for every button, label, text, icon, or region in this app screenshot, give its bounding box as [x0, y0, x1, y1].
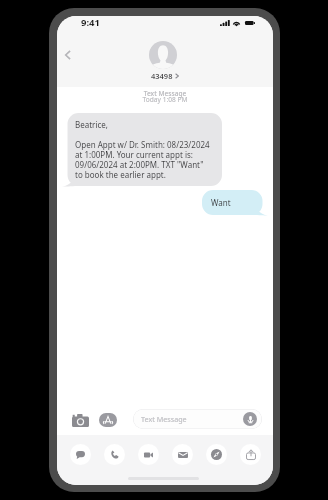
staticText: Today 1:08 PM — [57, 95, 273, 104]
staticText: Text Message — [57, 89, 273, 98]
button[interactable]: Messages — [70, 444, 91, 465]
staticText: Text Message — [141, 414, 187, 424]
button[interactable]: FaceTime — [138, 444, 159, 465]
button[interactable]: Share — [240, 444, 261, 465]
button[interactable]: Browser — [206, 444, 227, 465]
button[interactable]: Want — [202, 190, 268, 215]
button[interactable]: Beatrice, Open Appt w/ Dr. Smith: 08/23/… — [62, 113, 222, 186]
button[interactable]: Mail — [172, 444, 193, 465]
button[interactable]: Contact — [149, 41, 177, 69]
staticText: 43498 — [151, 71, 173, 81]
button[interactable]: Record audio — [243, 412, 257, 426]
button[interactable]: Apps — [97, 409, 119, 431]
staticText: Beatrice, Open Appt w/ Dr. Smith: 08/23/… — [75, 119, 210, 180]
button[interactable]: Back — [59, 46, 77, 64]
button[interactable]: Text Message — [133, 409, 262, 429]
button[interactable]: Call — [104, 444, 125, 465]
staticText: Want — [211, 197, 231, 208]
staticText: 9:41 — [81, 16, 100, 29]
button[interactable]: Camera — [69, 409, 91, 431]
